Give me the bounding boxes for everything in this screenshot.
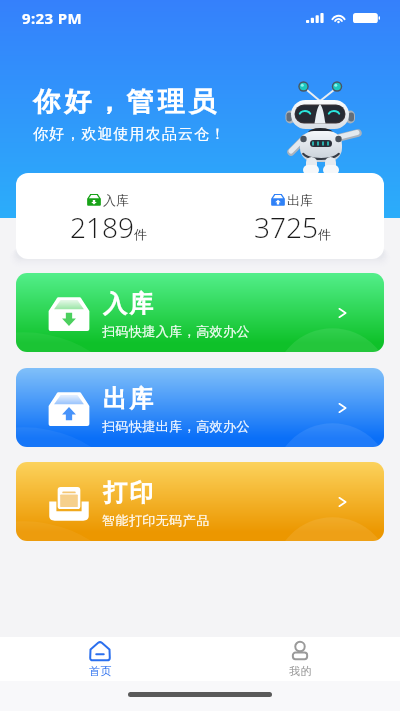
staticText: 件 — [318, 226, 331, 242]
button[interactable]: 首页 — [0, 637, 200, 681]
staticText: 智能打印无码产品 — [102, 512, 210, 528]
staticText: 入库 — [103, 192, 129, 208]
staticText: 出库 — [102, 384, 154, 414]
staticText: 首页 — [89, 664, 112, 678]
staticText: 扫码快捷入库，高效办公 — [102, 323, 250, 339]
staticText: 我的 — [289, 664, 312, 678]
button[interactable]: 入库 — [16, 273, 384, 352]
staticText: 件 — [134, 226, 147, 242]
staticText: 你好，欢迎使用农品云仓！ — [33, 125, 227, 144]
staticText: 9:23 PM — [22, 8, 83, 28]
staticText: 出库 — [287, 192, 313, 208]
staticText: 入库 — [102, 289, 154, 319]
button[interactable]: 打印 — [16, 462, 384, 541]
staticText: 打印 — [102, 478, 154, 508]
button[interactable]: 我的 — [200, 637, 400, 681]
button[interactable]: 出库 — [16, 368, 384, 447]
staticText: 你好，管理员 — [33, 85, 221, 119]
staticText: 扫码快捷出库，高效办公 — [102, 418, 250, 434]
staticText: 2189 — [70, 208, 134, 246]
staticText: 3725 — [254, 208, 318, 246]
